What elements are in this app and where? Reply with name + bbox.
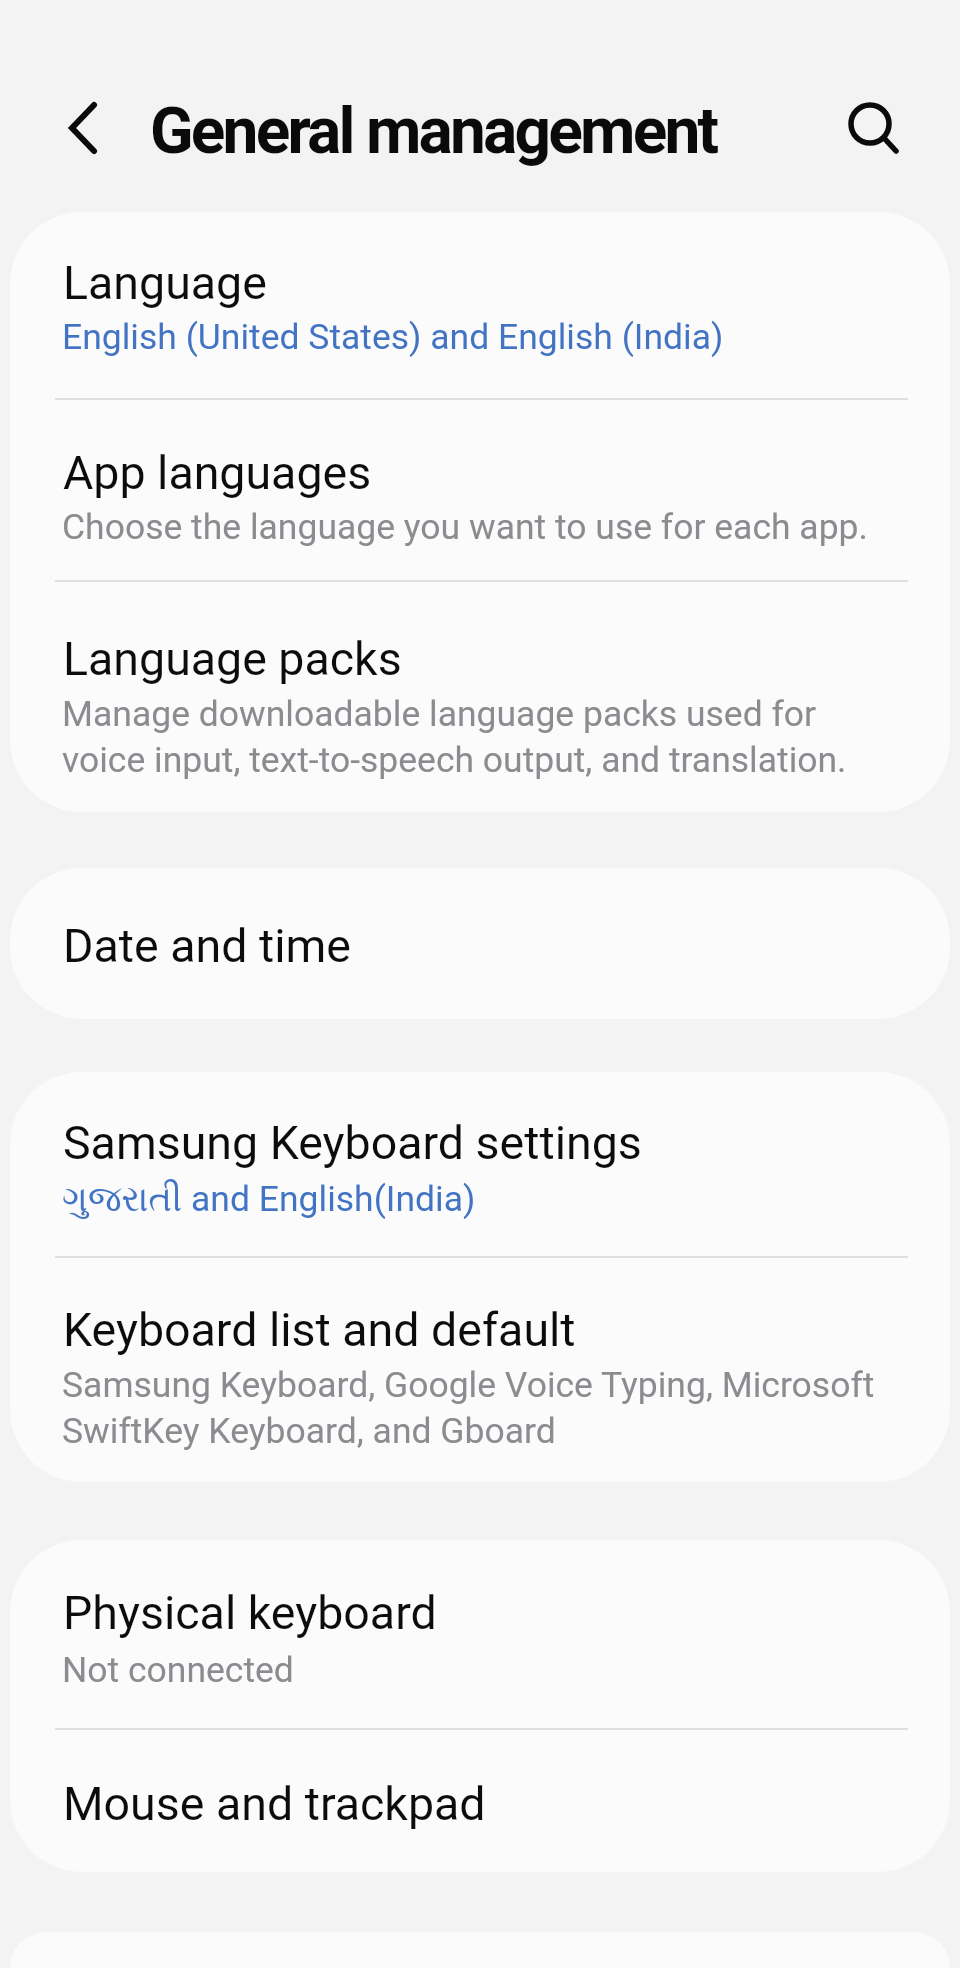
staticText: Samsung Keyboard, Google Voice Typing, M… xyxy=(62,1364,875,1452)
staticText: Mouse and trackpad xyxy=(63,1777,486,1831)
staticText: Choose the language you want to use for … xyxy=(62,506,868,548)
staticText: Physical keyboard xyxy=(63,1586,437,1640)
button[interactable]: Samsung Keyboard settings xyxy=(10,1072,950,1256)
staticText: General management xyxy=(150,94,717,169)
staticText: Manage downloadable language packs used … xyxy=(62,693,847,781)
staticText: English (United States) and English (Ind… xyxy=(62,316,724,358)
button[interactable] xyxy=(35,80,131,176)
staticText: Date and time xyxy=(63,919,351,973)
staticText: Samsung Keyboard settings xyxy=(63,1116,642,1170)
button[interactable]: Mouse and trackpad xyxy=(10,1730,950,1872)
staticText: Keyboard list and default xyxy=(63,1303,576,1357)
button[interactable]: Date and time xyxy=(10,868,950,1019)
button[interactable]: Language xyxy=(10,212,950,398)
staticText: ગુજરાતી and English(India) xyxy=(62,1178,476,1220)
staticText: Language xyxy=(63,256,267,310)
button[interactable]: App languages xyxy=(10,400,950,580)
staticText: Language packs xyxy=(63,632,402,686)
button[interactable]: Keyboard list and default xyxy=(10,1258,950,1482)
staticText: Not connected xyxy=(62,1649,294,1691)
button[interactable] xyxy=(824,76,920,172)
staticText: App languages xyxy=(63,446,372,500)
button[interactable]: Language packs xyxy=(10,582,950,812)
button[interactable]: Physical keyboard xyxy=(10,1540,950,1728)
